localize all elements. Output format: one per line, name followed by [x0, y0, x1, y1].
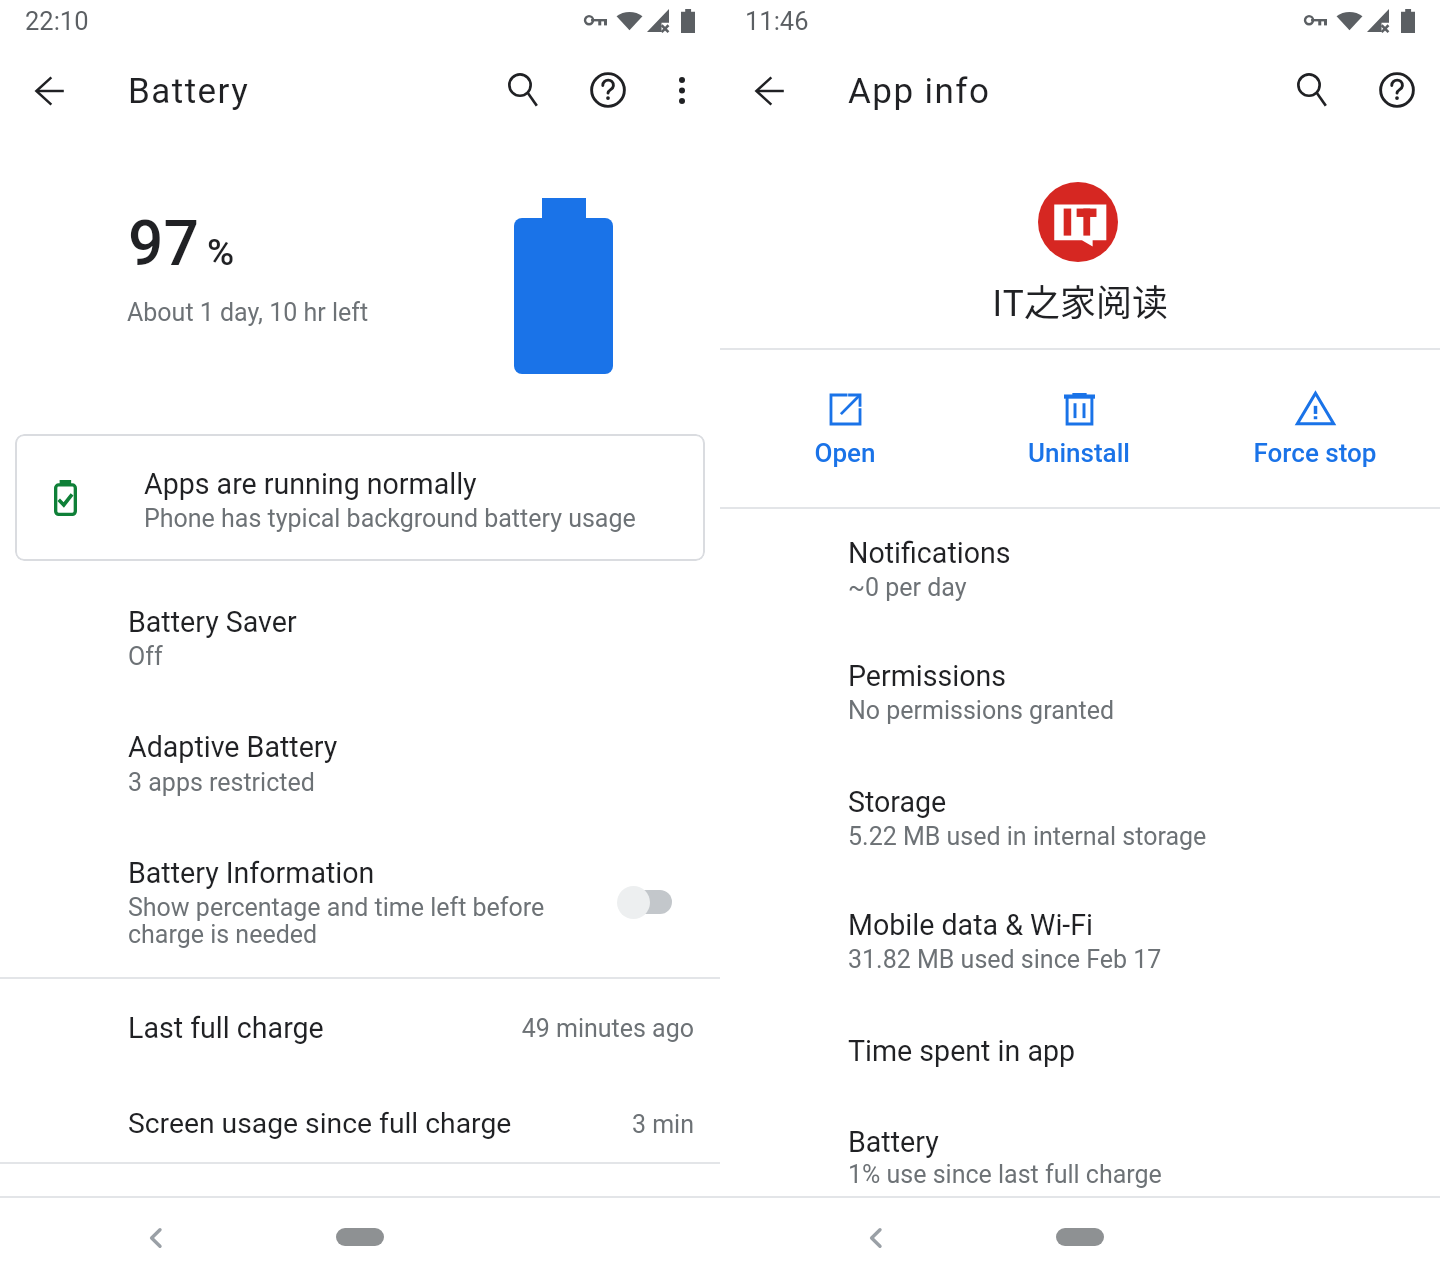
staticText: Apps are running normally [144, 467, 705, 501]
staticText: 3 apps restricted [128, 768, 848, 797]
button[interactable]: Help [1365, 58, 1429, 122]
button[interactable]: Apps are running normally [15, 434, 705, 561]
staticText: 11:46 [745, 6, 1440, 36]
button[interactable]: Last full charge [0, 990, 720, 1085]
button[interactable]: Notifications [720, 520, 1440, 624]
staticText: 97 [128, 207, 848, 280]
staticText: Uninstall [959, 438, 1199, 468]
staticText: Notifications [848, 536, 1440, 570]
button[interactable]: Adaptive Battery [0, 716, 720, 820]
staticText: Adaptive Battery [128, 730, 848, 764]
staticText: Time spent in app [848, 1034, 1440, 1068]
button[interactable]: Help [576, 58, 640, 122]
button[interactable]: Force stop [1195, 349, 1435, 507]
staticText: Phone has typical background battery usa… [144, 504, 705, 533]
staticText: 31.82 MB used since Feb 17 [848, 945, 1440, 974]
staticText: Mobile data & Wi-Fi [848, 908, 1440, 942]
button[interactable]: Storage [720, 769, 1440, 873]
button[interactable]: Back [849, 1207, 903, 1261]
staticText: 49 minutes ago [294, 1014, 694, 1043]
button[interactable]: Battery Information [0, 840, 720, 976]
staticText: Open [725, 438, 965, 468]
staticText: 3 min [294, 1110, 694, 1139]
staticText: About 1 day, 10 hr left [127, 298, 847, 327]
staticText: Show percentage and time left before cha… [128, 893, 558, 950]
staticText: Force stop [1195, 438, 1435, 468]
button[interactable]: Navigate up [741, 62, 799, 120]
button[interactable]: Time spent in app [720, 1018, 1440, 1098]
staticText: 1% use since last full charge [848, 1160, 1440, 1189]
staticText: Battery [128, 71, 848, 112]
staticText: App info [848, 71, 1440, 112]
staticText: Battery [848, 1125, 1440, 1159]
staticText: Battery Information [128, 856, 848, 890]
button[interactable]: Mobile data & Wi-Fi [720, 893, 1440, 997]
staticText: 22:10 [25, 6, 745, 36]
staticText: Battery Saver [128, 605, 848, 639]
button[interactable]: More options [665, 63, 699, 118]
button[interactable]: Navigate up [21, 62, 79, 120]
button[interactable]: Screen usage since full charge [0, 1085, 720, 1180]
button[interactable]: Permissions [720, 644, 1440, 748]
staticText: ~0 per day [848, 573, 1440, 602]
staticText: Last full charge [128, 1011, 848, 1045]
button[interactable]: Back [129, 1207, 183, 1261]
button[interactable]: Battery [720, 1108, 1440, 1212]
button[interactable]: Search [1283, 59, 1341, 121]
button[interactable]: Home [1042, 1210, 1118, 1256]
staticText: Storage [848, 785, 1440, 819]
button[interactable]: Battery information switch [600, 872, 688, 932]
staticText: 5.22 MB used in internal storage [848, 822, 1440, 851]
button[interactable]: Home [322, 1210, 398, 1256]
button[interactable]: Uninstall [959, 349, 1199, 507]
staticText: Permissions [848, 659, 1440, 693]
staticText: Screen usage since full charge [128, 1107, 848, 1140]
staticText: No permissions granted [848, 696, 1440, 725]
button[interactable]: Search [494, 59, 552, 121]
button[interactable]: Battery Saver [0, 592, 720, 696]
staticText: % [207, 231, 927, 274]
staticText: IT之家阅读 [880, 274, 1280, 326]
button[interactable]: Open [725, 349, 965, 507]
staticText: Off [128, 642, 848, 671]
